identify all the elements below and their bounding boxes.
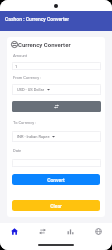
staticText: Convert <box>47 177 65 183</box>
staticText: Clear <box>50 203 62 209</box>
button[interactable]: Home <box>0 223 28 239</box>
button[interactable]: Clear <box>12 200 100 211</box>
staticText: INR - Indian Rupee <box>17 134 50 139</box>
button[interactable]: 1 <box>12 62 101 70</box>
staticText: Currency Converter <box>18 41 71 48</box>
staticText: Amount <box>13 53 28 58</box>
button[interactable]: Swap currencies <box>12 101 101 112</box>
staticText: Date <box>13 148 22 153</box>
button[interactable]: Transfer <box>28 223 56 239</box>
staticText: 1 <box>15 64 18 69</box>
button[interactable]: Currencies <box>84 223 112 239</box>
staticText: From Currency : <box>13 75 42 80</box>
staticText: USD - US Dollar <box>17 87 45 92</box>
staticText: To Currency : <box>13 120 37 125</box>
button[interactable] <box>12 159 101 167</box>
button[interactable]: Statistics <box>56 223 84 239</box>
button[interactable]: USD - US Dollar <box>12 84 101 95</box>
button[interactable]: Convert <box>12 174 100 185</box>
button[interactable]: INR - Indian Rupee <box>12 131 101 142</box>
staticText: Cashon : Currency Converter <box>5 16 70 22</box>
